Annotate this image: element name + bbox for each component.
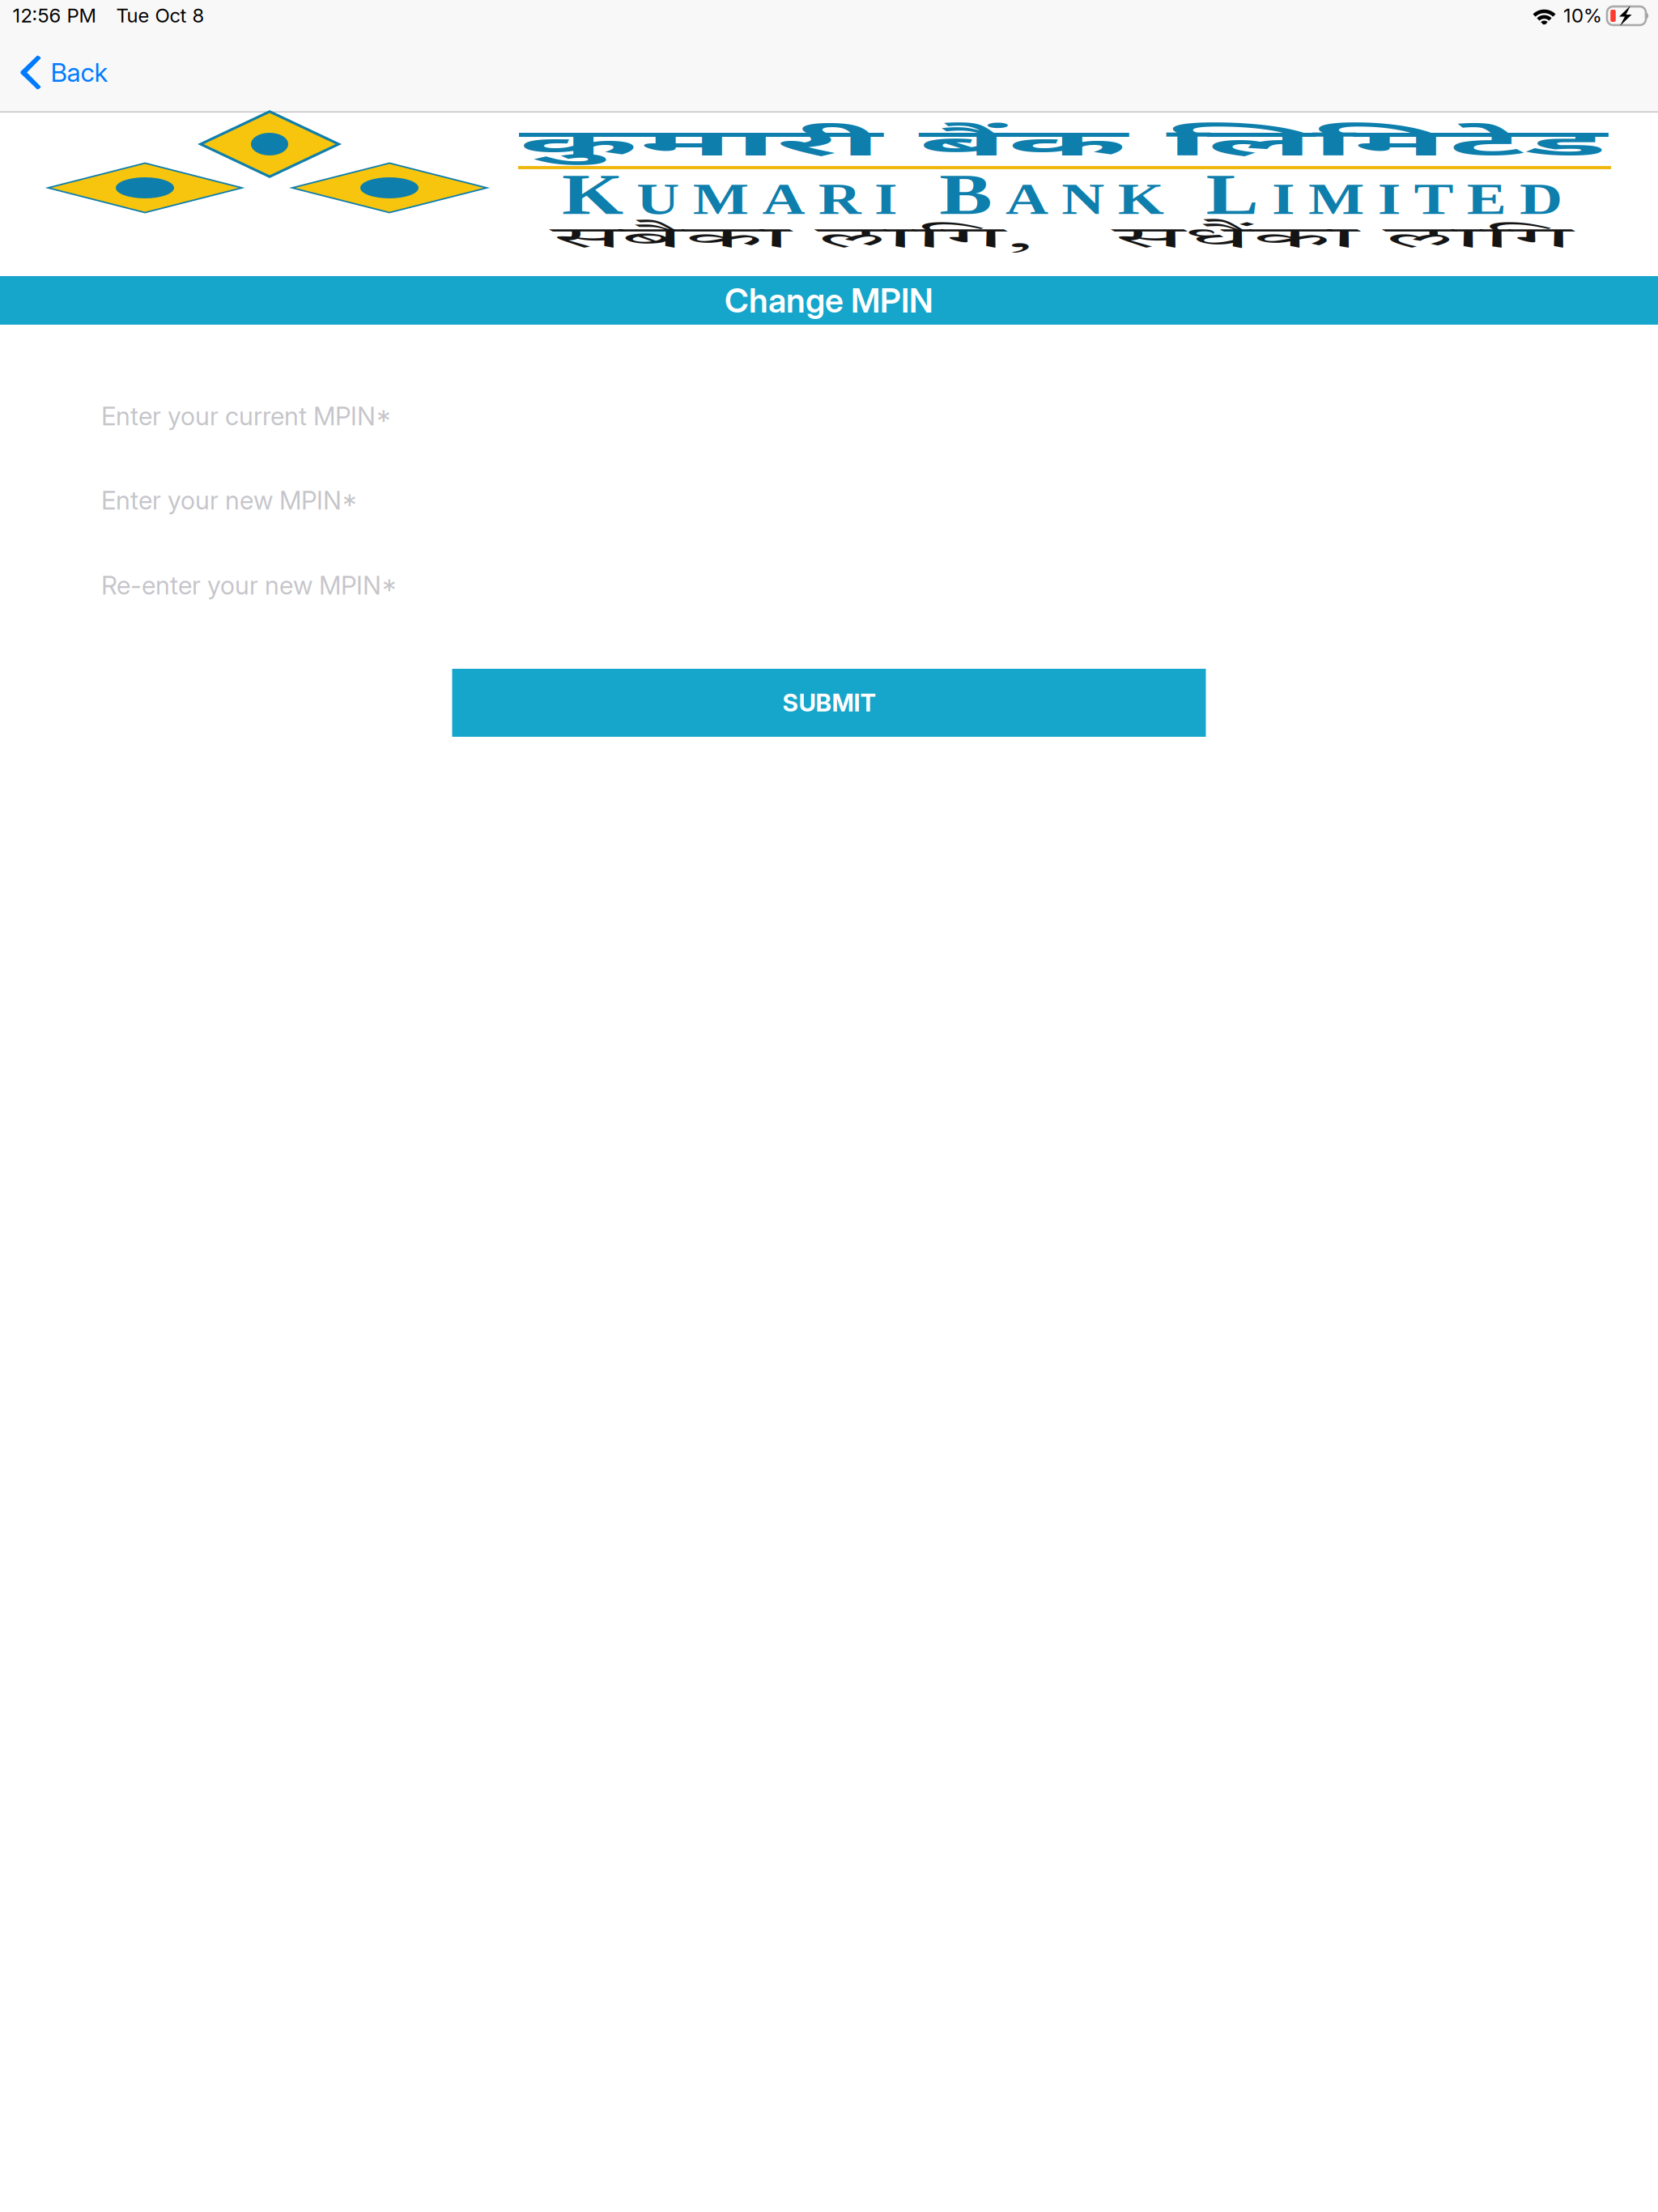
button[interactable]: Re-enter your new MPIN* [101, 556, 1558, 615]
staticText: Change MPIN [725, 280, 933, 321]
button[interactable]: Enter your new MPIN* [101, 471, 1558, 530]
staticText: Tue Oct 8 [116, 4, 204, 27]
staticText: Enter your current MPIN* [101, 401, 392, 431]
staticText: KUMARI BANK LIMITED [694, 163, 1430, 226]
staticText: 10% [1563, 4, 1602, 27]
staticText: 12:56 PM [13, 4, 96, 27]
staticText: कुमारी बैंक लिमिटेड [924, 123, 1202, 170]
button[interactable]: Enter your current MPIN* [101, 387, 1558, 445]
staticText: Enter your new MPIN* [101, 485, 358, 516]
staticText: Back [51, 57, 108, 88]
button[interactable]: SUBMIT [452, 669, 1206, 737]
staticText: सबैका लागि, सधैंका लागि [919, 225, 1205, 254]
button[interactable]: Back [0, 47, 130, 112]
staticText: Re-enter your new MPIN* [101, 570, 397, 601]
staticText: SUBMIT [782, 688, 876, 717]
